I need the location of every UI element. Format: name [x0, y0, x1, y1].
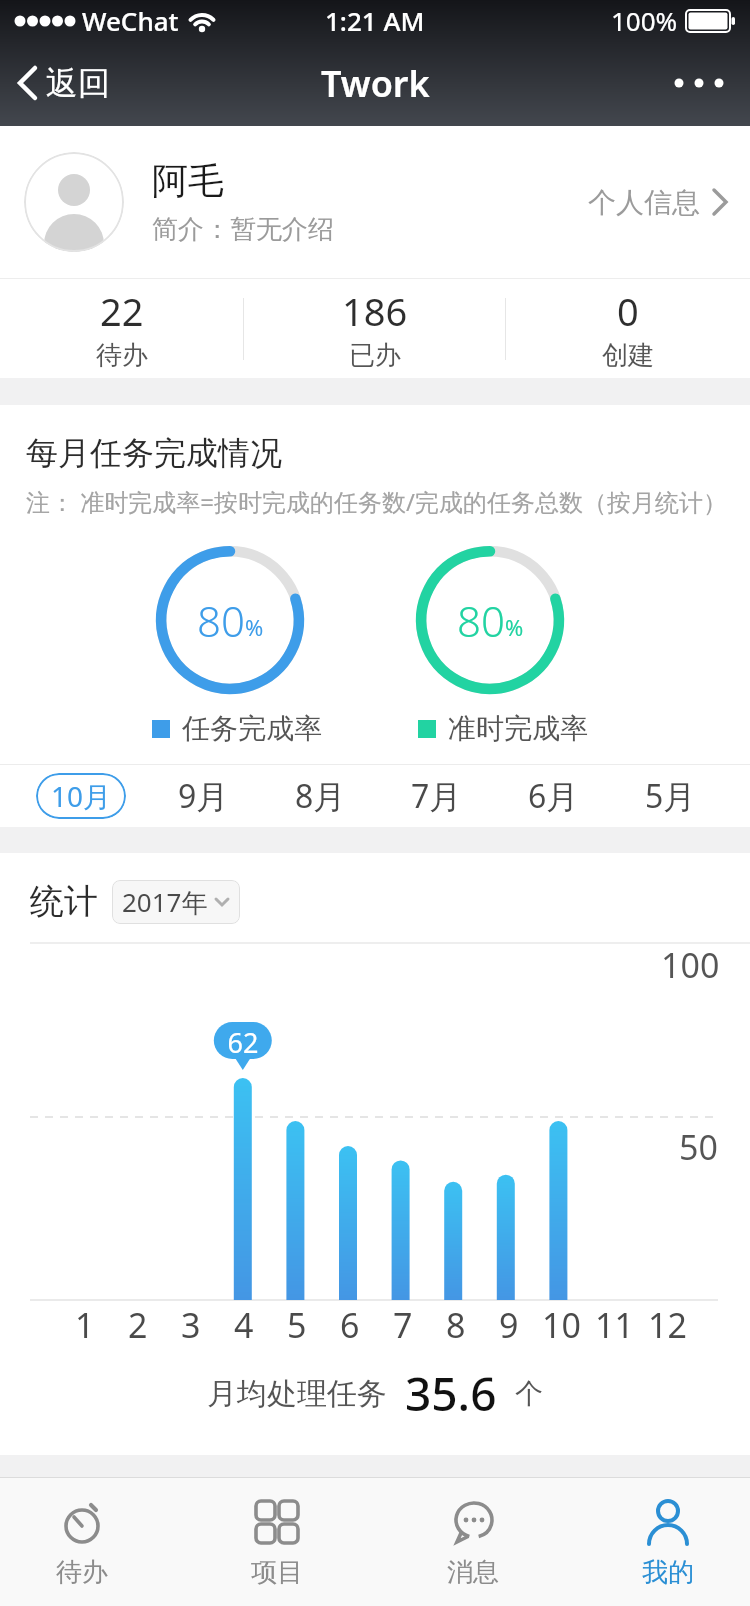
staticText: 待办: [96, 339, 148, 372]
staticText: WeChat: [82, 3, 179, 38]
staticText: 1:21 AM: [325, 3, 425, 38]
button[interactable]: 6月: [513, 773, 593, 819]
staticText: %: [505, 612, 524, 642]
staticText: 10月: [51, 777, 112, 815]
staticText: %: [245, 612, 264, 642]
staticText: 80: [457, 592, 505, 649]
staticText: 返回: [46, 63, 110, 103]
staticText: 10: [542, 1302, 581, 1348]
staticText: 个人信息: [588, 185, 700, 220]
button[interactable]: 0: [506, 285, 750, 372]
staticText: 186: [342, 285, 408, 337]
staticText: 4: [234, 1302, 254, 1348]
staticText: 7月: [411, 774, 462, 818]
staticText: Twork: [321, 59, 430, 108]
staticText: 简介：暂无介绍: [152, 213, 334, 246]
button[interactable]: 22: [0, 285, 243, 372]
staticText: 80: [197, 592, 245, 649]
staticText: 6: [340, 1302, 360, 1348]
staticText: 项目: [251, 1556, 303, 1589]
button[interactable]: 消息: [425, 1478, 521, 1606]
staticText: 个: [515, 1376, 543, 1411]
button[interactable]: 项目: [229, 1478, 325, 1606]
button[interactable]: 2017年: [112, 880, 240, 924]
staticText: 5: [287, 1302, 307, 1348]
staticText: 消息: [447, 1556, 499, 1589]
staticText: 每月任务完成情况: [26, 433, 282, 473]
staticText: 11: [595, 1302, 634, 1348]
button[interactable]: 186: [244, 285, 505, 372]
button[interactable]: [674, 65, 726, 101]
staticText: 阿毛: [152, 158, 224, 203]
staticText: 任务完成率: [182, 711, 322, 746]
staticText: 9: [499, 1302, 519, 1348]
button[interactable]: 待办: [34, 1478, 130, 1606]
staticText: 100%: [611, 3, 678, 38]
button[interactable]: 7月: [396, 773, 476, 819]
button[interactable]: 5月: [630, 773, 710, 819]
staticText: 2: [128, 1302, 148, 1348]
button[interactable]: 我的: [620, 1478, 716, 1606]
staticText: 统计: [30, 880, 98, 923]
staticText: 准时完成率: [448, 711, 588, 746]
staticText: 22: [100, 285, 144, 337]
staticText: 35.6: [405, 1362, 497, 1425]
staticText: 100: [661, 942, 720, 988]
staticText: 8月: [295, 774, 346, 818]
staticText: 创建: [602, 339, 654, 372]
staticText: 3: [181, 1302, 201, 1348]
staticText: 50: [679, 1124, 718, 1170]
staticText: 7: [393, 1302, 413, 1348]
staticText: 2017年: [122, 884, 208, 920]
staticText: 8: [446, 1302, 466, 1348]
staticText: 0: [617, 285, 639, 337]
staticText: 注： 准时完成率=按时完成的任务数/完成的任务总数（按月统计）: [26, 485, 727, 518]
staticText: 12: [648, 1302, 687, 1348]
button[interactable]: 阿毛: [0, 126, 750, 278]
staticText: 我的: [642, 1556, 694, 1589]
staticText: 5月: [645, 774, 696, 818]
button[interactable]: 返回: [16, 63, 110, 103]
staticText: 62: [214, 1024, 272, 1061]
button[interactable]: 8月: [280, 773, 360, 819]
staticText: 1: [75, 1302, 95, 1348]
staticText: 月均处理任务: [207, 1375, 387, 1413]
button[interactable]: 10月: [36, 773, 126, 819]
staticText: 待办: [56, 1556, 108, 1589]
button[interactable]: 9月: [163, 773, 243, 819]
staticText: 已办: [349, 339, 401, 372]
staticText: 6月: [528, 774, 579, 818]
staticText: 9月: [178, 774, 229, 818]
